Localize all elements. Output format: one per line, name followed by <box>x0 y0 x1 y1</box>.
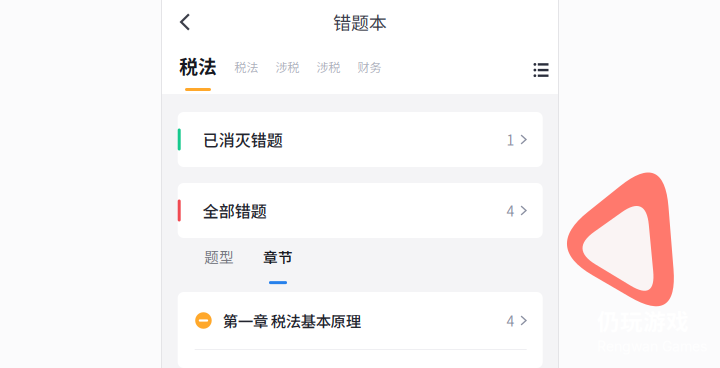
staticText: 第一章 税法基本原理 <box>223 309 361 332</box>
staticText: 涉税 <box>316 58 340 75</box>
button[interactable]: 涉税 <box>308 44 349 94</box>
staticText: 已消灭错题 <box>203 128 283 151</box>
staticText: 章节 <box>263 246 293 267</box>
button[interactable]: 全部错题 <box>178 183 543 238</box>
button[interactable]: 涉税 <box>267 44 308 94</box>
staticText: 税法 <box>179 52 217 79</box>
button[interactable]: Question list <box>525 44 557 94</box>
staticText: 1 <box>506 129 514 150</box>
staticText: 涉税 <box>275 58 299 75</box>
button[interactable]: 税法 <box>179 44 217 94</box>
staticText: 全部错题 <box>203 199 267 222</box>
button[interactable]: 已消灭错题 <box>178 112 543 167</box>
staticText: 错题本 <box>333 9 387 35</box>
button[interactable]: 财务 <box>349 44 390 94</box>
button[interactable]: 税法 <box>226 44 267 94</box>
button[interactable]: 第一章 税法基本原理 <box>178 292 543 349</box>
button[interactable]: Back <box>162 0 208 44</box>
button[interactable]: 章节 <box>262 238 294 292</box>
staticText: 仍玩游戏 <box>597 304 689 337</box>
staticText: 税法 <box>234 58 258 75</box>
staticText: 题型 <box>204 246 234 267</box>
button[interactable]: 题型 <box>203 238 235 292</box>
staticText: 4 <box>506 310 514 331</box>
staticText: 4 <box>506 200 514 221</box>
staticText: 财务 <box>357 58 381 75</box>
